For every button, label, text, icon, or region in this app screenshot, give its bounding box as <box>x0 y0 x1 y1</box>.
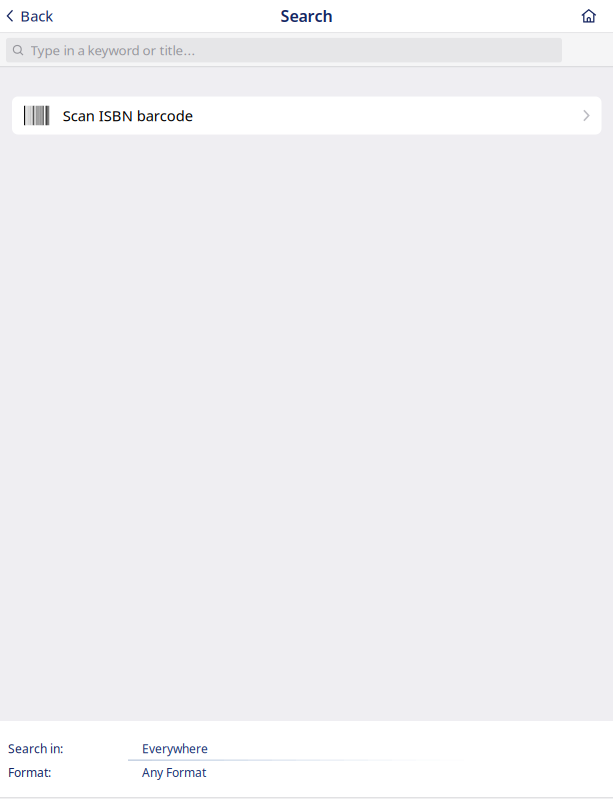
button[interactable]: Format: <box>0 766 613 779</box>
button[interactable]: Type in a keyword or title... <box>6 38 562 62</box>
button[interactable]: Home <box>567 1 613 33</box>
button[interactable]: Search in: <box>0 742 613 763</box>
staticText: Type in a keyword or title... <box>31 41 196 59</box>
staticText: Everywhere <box>142 740 208 756</box>
staticText: Format: <box>8 764 51 780</box>
staticText: Back <box>20 6 53 26</box>
staticText: Search in: <box>8 740 63 756</box>
staticText: Search <box>280 5 332 26</box>
button[interactable]: Scan ISBN barcode <box>12 96 601 134</box>
staticText: Any Format <box>142 764 206 780</box>
button[interactable]: Back <box>0 1 65 33</box>
staticText: Scan ISBN barcode <box>63 106 193 125</box>
